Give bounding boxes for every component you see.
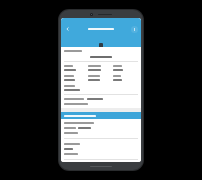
button[interactable]: More options bbox=[131, 26, 138, 33]
button[interactable] bbox=[61, 112, 141, 119]
button[interactable]: Back bbox=[64, 25, 72, 33]
button[interactable]: Expand bbox=[99, 43, 103, 48]
